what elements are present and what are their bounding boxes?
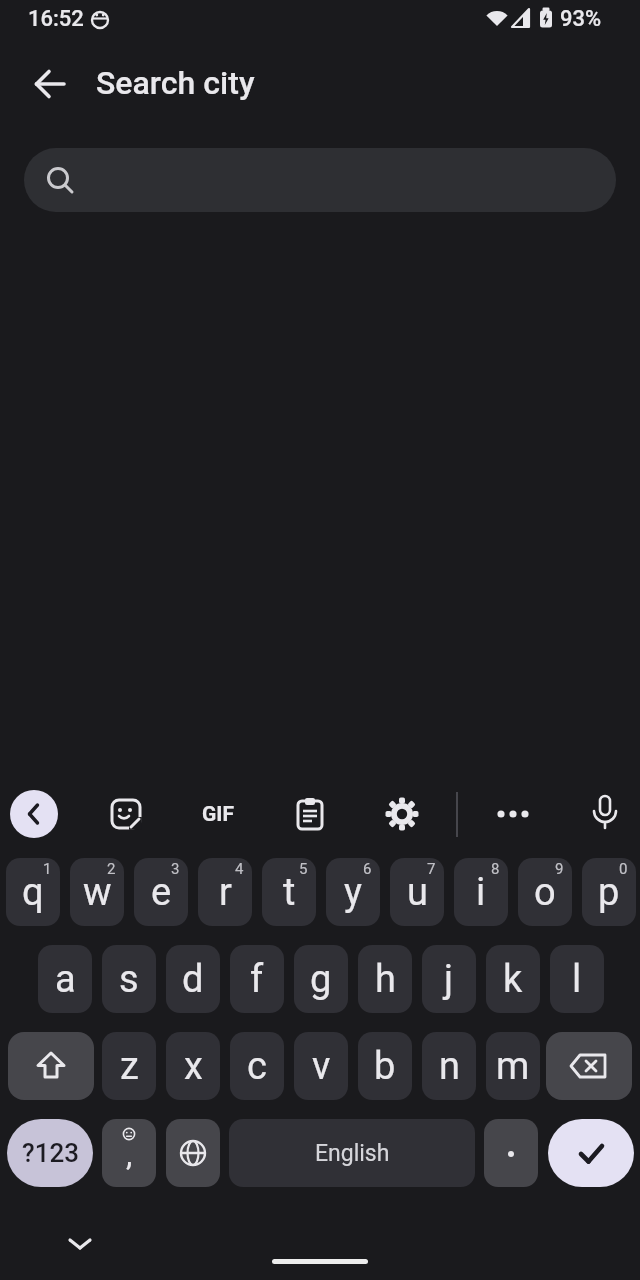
button[interactable]: n [422, 1032, 476, 1100]
button[interactable] [484, 1119, 538, 1187]
staticText: 9 [555, 860, 564, 878]
button[interactable]: j [422, 945, 476, 1013]
button[interactable]: d [166, 945, 220, 1013]
staticText: c [247, 1044, 267, 1089]
staticText: g [310, 957, 332, 1002]
button[interactable]: h [358, 945, 412, 1013]
staticText: r [219, 870, 232, 915]
button[interactable] [382, 794, 422, 834]
button[interactable]: GIF [192, 794, 244, 834]
staticText: 16:52 [28, 6, 84, 32]
staticText: w [83, 870, 112, 915]
staticText: 6 [363, 860, 372, 878]
button[interactable]: r [198, 858, 252, 926]
staticText: 1 [43, 860, 52, 878]
button[interactable]: English [229, 1119, 475, 1187]
button[interactable]: ?123 [7, 1119, 93, 1187]
staticText: 2 [107, 860, 116, 878]
button[interactable]: q [6, 858, 60, 926]
button[interactable] [585, 792, 625, 836]
button[interactable]: c [230, 1032, 284, 1100]
staticText: 7 [427, 860, 436, 878]
button[interactable] [290, 794, 330, 834]
button[interactable]: p [582, 858, 636, 926]
staticText: 4 [235, 860, 244, 878]
button[interactable]: w [70, 858, 124, 926]
staticText: 93% [560, 6, 602, 32]
button[interactable]: u [390, 858, 444, 926]
button[interactable]: m [486, 1032, 540, 1100]
staticText: k [503, 957, 523, 1002]
staticText: x [184, 1044, 203, 1089]
button[interactable] [24, 148, 616, 212]
button[interactable]: l [550, 945, 604, 1013]
staticText: h [375, 957, 396, 1002]
staticText: ?123 [22, 1138, 79, 1168]
staticText: z [120, 1044, 139, 1089]
button[interactable] [106, 794, 146, 834]
button[interactable]: g [294, 945, 348, 1013]
button[interactable]: y [326, 858, 380, 926]
button[interactable]: b [358, 1032, 412, 1100]
staticText: , [126, 1135, 133, 1173]
button[interactable] [489, 794, 537, 834]
staticText: 5 [299, 860, 308, 878]
staticText: 3 [171, 860, 180, 878]
button[interactable] [56, 1226, 104, 1262]
staticText: Search city [96, 64, 255, 102]
button[interactable] [8, 1032, 94, 1100]
staticText: q [22, 870, 44, 915]
staticText: i [476, 870, 486, 915]
button[interactable] [166, 1119, 220, 1187]
staticText: u [407, 870, 428, 915]
button[interactable]: f [230, 945, 284, 1013]
button[interactable]: , [102, 1119, 156, 1187]
staticText: p [598, 870, 620, 915]
button[interactable]: v [294, 1032, 348, 1100]
button[interactable]: i [454, 858, 508, 926]
staticText: m [496, 1044, 530, 1089]
staticText: d [182, 957, 204, 1002]
button[interactable]: o [518, 858, 572, 926]
button[interactable]: e [134, 858, 188, 926]
staticText: a [55, 957, 76, 1002]
staticText: English [315, 1140, 390, 1167]
staticText: v [312, 1044, 331, 1089]
button[interactable]: s [102, 945, 156, 1013]
button[interactable] [546, 1032, 632, 1100]
staticText: y [344, 870, 362, 915]
button[interactable] [24, 58, 76, 110]
staticText: f [250, 957, 264, 1002]
button[interactable]: a [38, 945, 92, 1013]
button[interactable] [548, 1119, 634, 1187]
staticText: n [439, 1044, 460, 1089]
button[interactable]: k [486, 945, 540, 1013]
staticText: s [119, 957, 139, 1002]
staticText: b [374, 1044, 396, 1089]
button[interactable] [10, 790, 58, 838]
staticText: o [534, 870, 556, 915]
staticText: GIF [202, 802, 234, 827]
staticText: 0 [619, 860, 628, 878]
button[interactable]: t [262, 858, 316, 926]
staticText: e [151, 870, 172, 915]
button[interactable]: x [166, 1032, 220, 1100]
staticText: j [444, 957, 454, 1002]
button[interactable]: z [102, 1032, 156, 1100]
staticText: 8 [491, 860, 500, 878]
staticText: l [572, 957, 582, 1002]
staticText: t [283, 870, 296, 915]
